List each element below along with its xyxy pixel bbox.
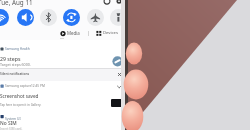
staticText: Samsung Health — [5, 47, 30, 51]
button[interactable] — [17, 9, 34, 26]
button[interactable]: Devices — [94, 29, 121, 38]
staticText: Tap here to open it in Gallery. — [0, 103, 42, 107]
button[interactable]: Samsung capture — [0, 81, 122, 114]
staticText: 12:45 PM — [31, 84, 45, 88]
staticText: Media — [67, 30, 80, 36]
staticText: Silent notifications — [0, 72, 30, 76]
staticText: Target steps 6000. — [0, 62, 31, 67]
staticText: 29 steps — [0, 55, 21, 62]
button[interactable]: Media — [58, 29, 82, 38]
button[interactable] — [40, 9, 57, 26]
staticText: Devices — [103, 30, 118, 36]
button[interactable] — [110, 9, 127, 26]
button[interactable] — [111, 99, 123, 107]
staticText: No SIM — [0, 120, 17, 127]
staticText: Insert SIM card. — [0, 127, 23, 130]
button[interactable] — [0, 9, 9, 26]
button[interactable] — [87, 9, 104, 26]
staticText: System UI — [5, 116, 21, 120]
button[interactable]: Samsung Health — [0, 40, 122, 68]
staticText: Tue, Aug 11 — [0, 0, 33, 7]
button[interactable] — [63, 9, 80, 26]
button[interactable] — [117, 72, 122, 77]
button[interactable]: System UI — [0, 114, 122, 130]
staticText: Screenshot saved — [0, 93, 39, 99]
staticText: Samsung capture — [5, 84, 32, 88]
